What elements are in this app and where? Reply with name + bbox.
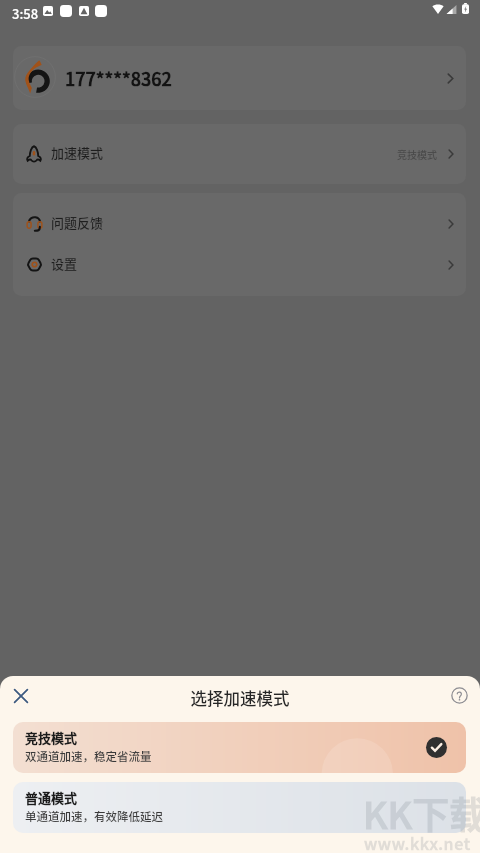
button[interactable]: 问题反馈 <box>13 203 466 244</box>
button[interactable]: 普通模式 <box>13 782 466 833</box>
staticText: www.kkx.net <box>364 831 471 853</box>
staticText: 双通道加速，稳定省流量 <box>25 748 152 765</box>
staticText: 单通道加速，有效降低延迟 <box>25 808 163 825</box>
staticText: KK下载 <box>363 786 480 840</box>
button[interactable]: Help <box>444 680 474 710</box>
button[interactable]: 设置 <box>13 244 466 285</box>
staticText: 问题反馈 <box>51 213 104 232</box>
staticText: 竞技模式 <box>397 147 437 161</box>
button[interactable]: Close <box>4 679 38 713</box>
staticText: 177****8362 <box>65 65 172 91</box>
button[interactable]: 竞技模式 <box>13 722 466 773</box>
staticText: 设置 <box>51 254 78 273</box>
button[interactable]: 177****8362 <box>13 46 466 110</box>
staticText: 选择加速模式 <box>0 686 480 710</box>
staticText: 竞技模式 <box>25 728 78 747</box>
staticText: 3:58 <box>12 4 39 23</box>
button[interactable]: 加速模式 <box>13 124 466 184</box>
staticText: 普通模式 <box>25 788 78 807</box>
staticText: 加速模式 <box>51 143 104 162</box>
